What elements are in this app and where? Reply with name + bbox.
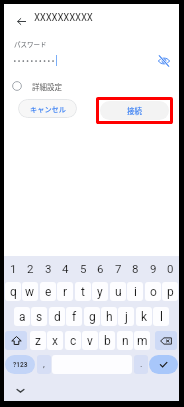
- staticText: z: [35, 334, 41, 348]
- button[interactable]: x: [47, 331, 63, 350]
- staticText: s: [36, 310, 43, 324]
- staticText: f: [72, 310, 77, 324]
- staticText: r: [63, 285, 68, 299]
- button[interactable]: i: [127, 282, 143, 301]
- staticText: 1: [10, 262, 17, 275]
- button[interactable]: w: [22, 282, 38, 301]
- button[interactable]: Hide keyboard: [10, 380, 30, 400]
- staticText: w: [25, 285, 35, 299]
- button[interactable]: 接続: [100, 101, 169, 120]
- button[interactable]: キャンセル: [18, 99, 77, 118]
- staticText: n: [122, 334, 129, 348]
- button[interactable]: 7: [110, 259, 127, 277]
- staticText: パスワード: [14, 39, 47, 48]
- button[interactable]: 2: [22, 259, 39, 277]
- button[interactable]: [155, 331, 177, 350]
- staticText: k: [141, 310, 148, 324]
- button[interactable]: d: [49, 307, 65, 326]
- button[interactable]: c: [65, 331, 81, 350]
- button[interactable]: b: [99, 331, 115, 350]
- button[interactable]: 4: [57, 259, 74, 277]
- button[interactable]: .: [134, 355, 148, 374]
- button[interactable]: 3: [40, 259, 57, 277]
- staticText: d: [54, 310, 61, 324]
- staticText: 4: [62, 262, 69, 275]
- staticText: 接続: [127, 105, 142, 116]
- staticText: p: [167, 285, 174, 299]
- button[interactable]: a: [14, 307, 30, 326]
- staticText: a: [19, 310, 26, 324]
- button[interactable]: g: [84, 307, 100, 326]
- button[interactable]: t: [75, 282, 91, 301]
- staticText: m: [137, 334, 148, 348]
- button[interactable]: j: [118, 307, 134, 326]
- staticText: u: [115, 285, 122, 299]
- staticText: 6: [97, 262, 104, 275]
- staticText: i: [134, 285, 137, 299]
- staticText: 3: [45, 262, 52, 275]
- staticText: 5: [80, 262, 87, 275]
- button[interactable]: l: [153, 307, 169, 326]
- staticText: 8: [132, 262, 139, 275]
- staticText: ?123: [13, 361, 28, 369]
- staticText: キャンセル: [30, 104, 66, 114]
- button[interactable]: p: [162, 282, 178, 301]
- button[interactable]: ?123: [5, 355, 35, 374]
- staticText: b: [104, 334, 111, 348]
- button[interactable]: 9: [145, 259, 162, 277]
- staticText: e: [45, 285, 52, 299]
- staticText: t: [81, 285, 85, 299]
- staticText: 9: [150, 262, 157, 275]
- button[interactable]: [5, 331, 27, 350]
- button[interactable]: n: [117, 331, 133, 350]
- button[interactable]: 1: [5, 259, 22, 277]
- staticText: XXXXXXXXXX: [34, 11, 93, 24]
- staticText: x: [52, 334, 58, 348]
- staticText: j: [125, 310, 128, 324]
- button[interactable]: o: [145, 282, 161, 301]
- button[interactable]: Back: [9, 9, 33, 33]
- button[interactable]: k: [136, 307, 152, 326]
- staticText: c: [70, 334, 77, 348]
- button[interactable]: r: [57, 282, 73, 301]
- button[interactable]: Show password: [154, 51, 174, 71]
- button[interactable]: y: [92, 282, 108, 301]
- button[interactable]: h: [101, 307, 117, 326]
- button[interactable]: v: [82, 331, 98, 350]
- button[interactable]: z: [30, 331, 46, 350]
- staticText: h: [106, 310, 113, 324]
- button[interactable]: ,: [37, 355, 51, 374]
- button[interactable]: 詳細設定: [12, 76, 62, 96]
- staticText: l: [160, 310, 163, 324]
- staticText: o: [150, 285, 157, 299]
- button[interactable]: 6: [92, 259, 109, 277]
- staticText: .: [140, 359, 143, 370]
- staticText: y: [97, 285, 103, 299]
- staticText: 詳細設定: [32, 81, 62, 92]
- staticText: v: [87, 334, 93, 348]
- staticText: 0: [167, 262, 174, 275]
- button[interactable]: u: [110, 282, 126, 301]
- button[interactable]: q: [5, 282, 21, 301]
- staticText: ,: [43, 359, 45, 370]
- staticText: g: [89, 310, 96, 324]
- staticText: 2: [27, 262, 34, 275]
- button[interactable]: m: [134, 331, 150, 350]
- button[interactable]: s: [31, 307, 47, 326]
- button[interactable]: 0: [162, 259, 179, 277]
- staticText: 7: [115, 262, 122, 275]
- button[interactable]: Enter: [149, 355, 178, 374]
- staticText: q: [10, 285, 17, 299]
- button[interactable]: 5: [75, 259, 92, 277]
- button[interactable]: f: [66, 307, 82, 326]
- button[interactable]: e: [40, 282, 56, 301]
- button[interactable]: 8: [127, 259, 144, 277]
